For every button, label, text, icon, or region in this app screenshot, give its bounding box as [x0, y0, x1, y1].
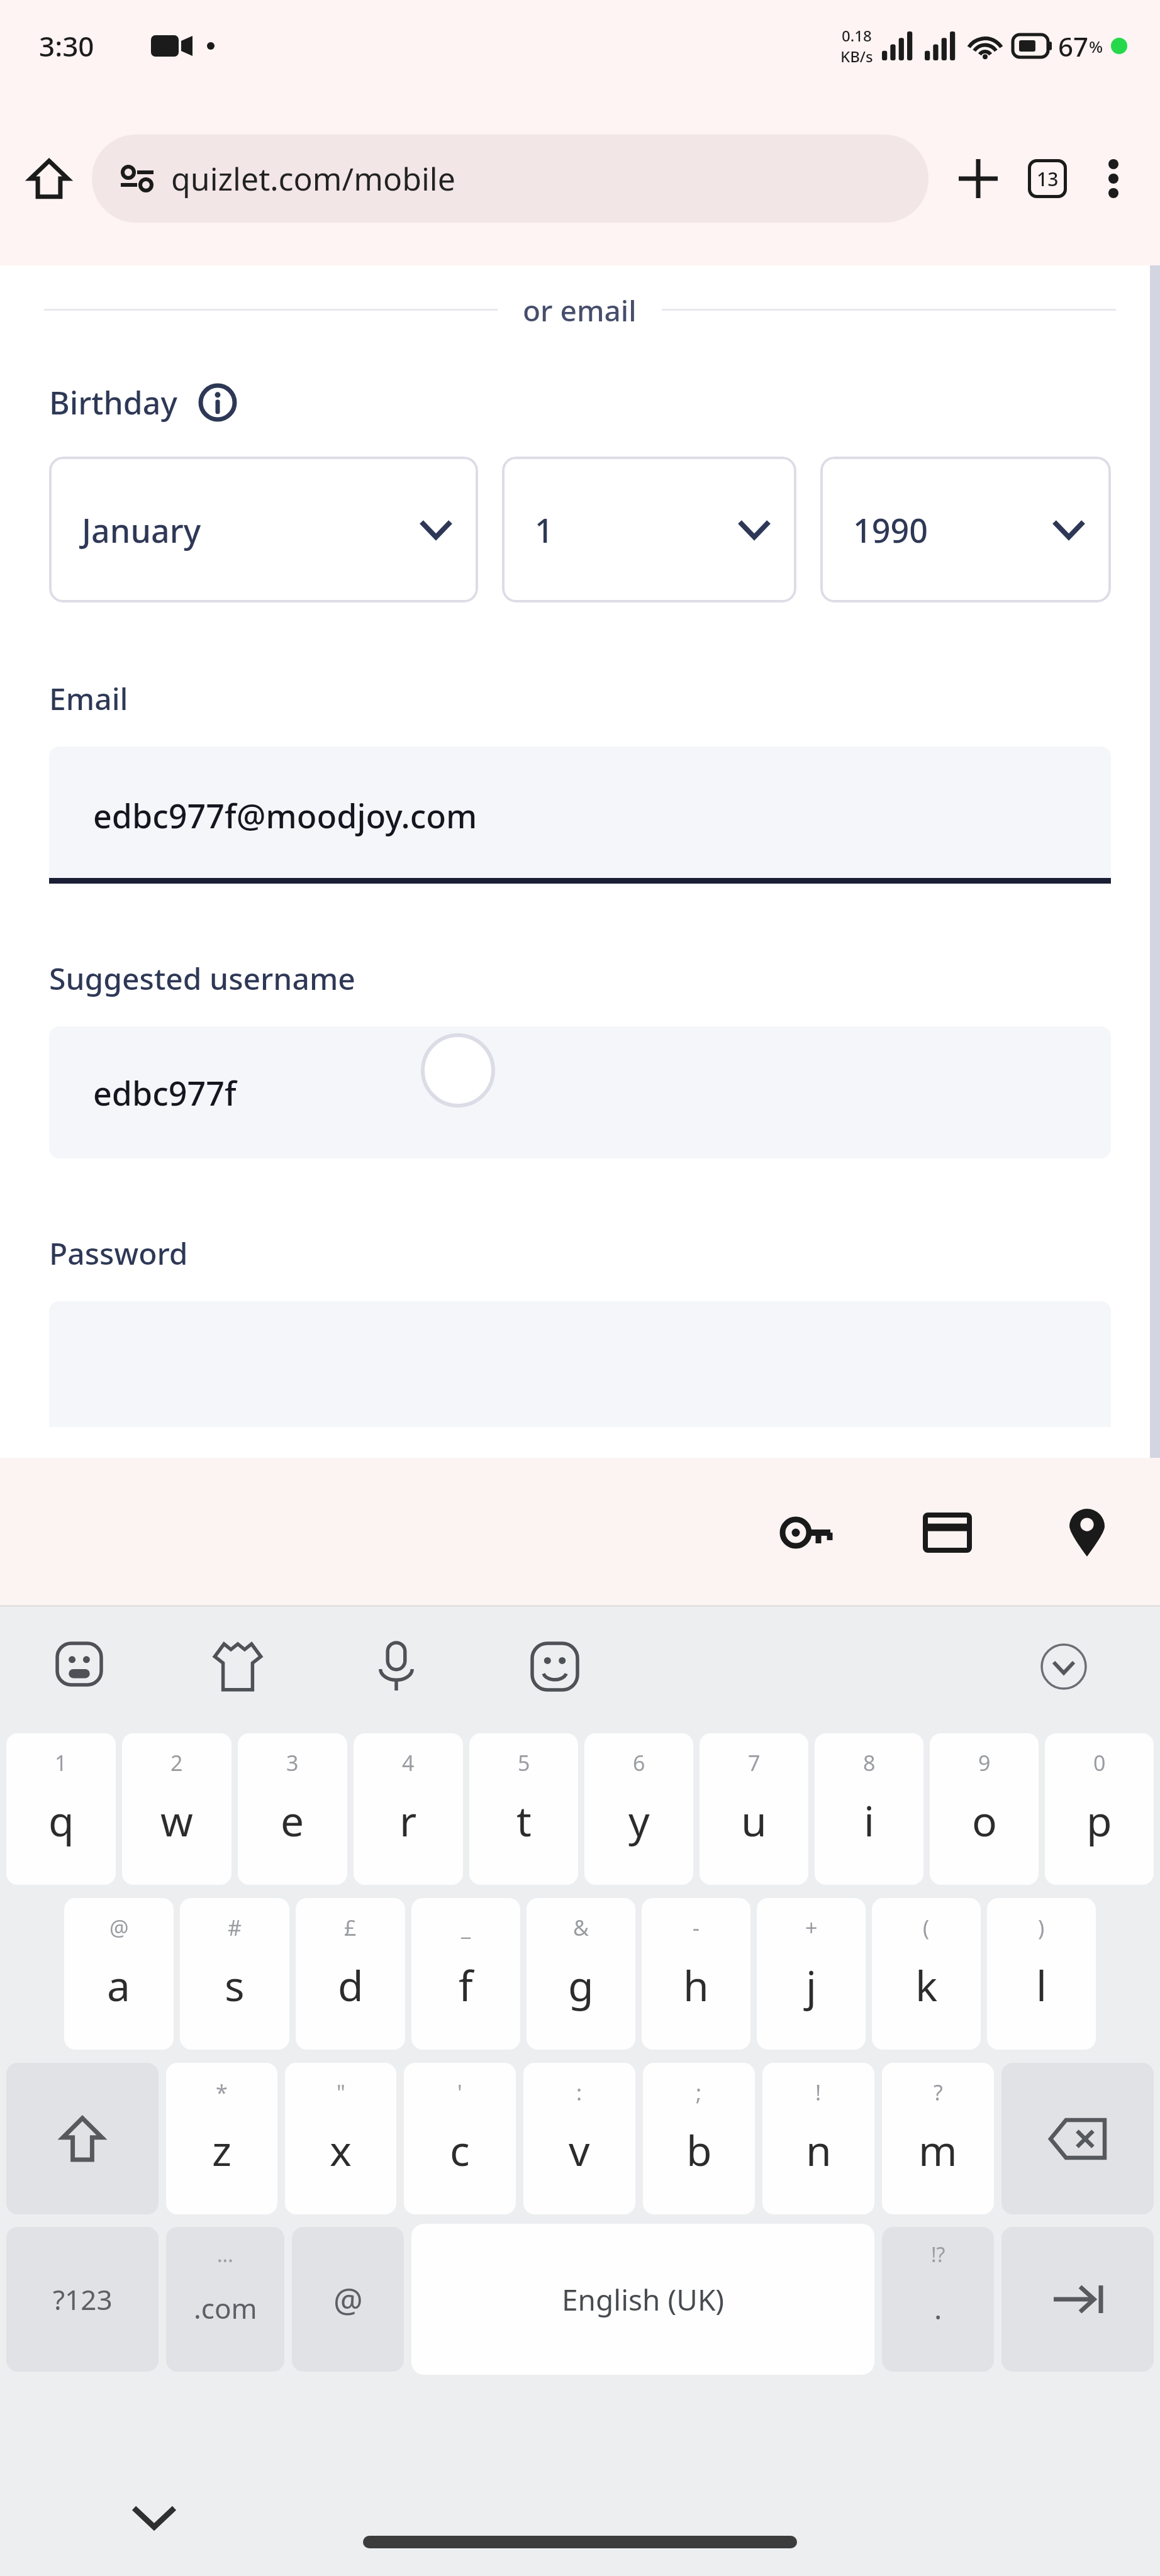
staticText: @: [109, 1913, 129, 1942]
button[interactable]: 1: [6, 1733, 116, 1885]
button[interactable]: _: [411, 1898, 520, 2050]
staticText: (: [923, 1913, 930, 1942]
staticText: 0.18: [842, 25, 872, 46]
staticText: g: [568, 1957, 594, 2013]
staticText: English (UK): [562, 2280, 725, 2319]
button[interactable]: 9: [930, 1733, 1039, 1885]
button[interactable]: edbc977f@moodjoy.com: [49, 747, 1111, 884]
button[interactable]: Tabs, 13 open: [1013, 144, 1082, 213]
button[interactable]: ...: [166, 2227, 284, 2372]
button[interactable]: *: [166, 2063, 277, 2214]
button[interactable]: Payment methods: [912, 1497, 983, 1568]
staticText: _: [461, 1913, 471, 1942]
staticText: .: [934, 2289, 942, 2328]
button[interactable]: +: [757, 1898, 866, 2050]
staticText: +: [805, 1913, 818, 1942]
button[interactable]: More: [1029, 1632, 1098, 1701]
button[interactable]: !: [762, 2063, 874, 2214]
staticText: 8: [863, 1748, 876, 1777]
staticText: Birthday: [49, 381, 177, 424]
button[interactable]: Emoji: [520, 1631, 590, 1702]
staticText: Password: [49, 1233, 188, 1274]
staticText: quizlet.com/mobile: [171, 157, 455, 200]
button[interactable]: Shift: [6, 2063, 159, 2214]
button[interactable]: ": [285, 2063, 396, 2214]
staticText: Email: [49, 678, 128, 719]
staticText: @: [333, 2277, 363, 2322]
button[interactable]: @: [64, 1898, 174, 2050]
staticText: £: [344, 1913, 357, 1942]
button[interactable]: 1990: [820, 457, 1111, 602]
staticText: r: [399, 1792, 417, 1848]
staticText: or email: [523, 291, 637, 328]
button[interactable]: Why we need your birthday: [195, 380, 240, 425]
button[interactable]: ?123: [6, 2227, 159, 2372]
staticText: Suggested username: [49, 958, 355, 999]
button[interactable]: @: [292, 2227, 404, 2372]
button[interactable]: English (UK): [411, 2224, 874, 2375]
button[interactable]: Home: [15, 145, 83, 213]
staticText: ?: [934, 2078, 943, 2107]
button[interactable]: Backspace: [1001, 2063, 1154, 2214]
staticText: .com: [194, 2289, 257, 2327]
button[interactable]: ?: [882, 2063, 994, 2214]
staticText: 3: [286, 1748, 299, 1777]
staticText: ...: [217, 2241, 233, 2268]
button[interactable]: Voice input: [361, 1631, 432, 1702]
button[interactable]: &: [527, 1898, 635, 2050]
staticText: ': [457, 2078, 462, 2107]
button[interactable]: 4: [354, 1733, 463, 1885]
button[interactable]: Addresses: [1052, 1497, 1122, 1568]
staticText: *: [216, 2078, 228, 2107]
staticText: ): [1038, 1913, 1045, 1942]
staticText: January: [82, 508, 201, 552]
staticText: edbc977f: [93, 1070, 237, 1115]
button[interactable]: 2: [122, 1733, 231, 1885]
staticText: 67: [1058, 28, 1089, 64]
staticText: 2: [170, 1748, 183, 1777]
button[interactable]: 5: [469, 1733, 578, 1885]
button[interactable]: 0: [1045, 1733, 1154, 1885]
button[interactable]: 8: [815, 1733, 923, 1885]
button[interactable]: -: [642, 1898, 750, 2050]
button[interactable]: quizlet.com/mobile: [92, 135, 929, 223]
button[interactable]: (: [872, 1898, 981, 2050]
button[interactable]: January: [49, 457, 478, 602]
staticText: 1: [55, 1748, 67, 1777]
staticText: u: [741, 1792, 767, 1848]
button[interactable]: 7: [700, 1733, 808, 1885]
button[interactable]: edbc977f: [49, 1026, 1111, 1158]
button[interactable]: More options: [1082, 147, 1145, 210]
button[interactable]: 1: [502, 457, 796, 602]
button[interactable]: New tab: [944, 144, 1013, 213]
staticText: b: [686, 2121, 712, 2178]
button[interactable]: ;: [643, 2063, 755, 2214]
staticText: q: [48, 1792, 74, 1848]
staticText: KB/s: [840, 46, 873, 67]
staticText: o: [972, 1792, 997, 1848]
staticText: j: [806, 1957, 817, 2013]
button[interactable]: Themes: [203, 1631, 273, 1702]
staticText: 3:30: [39, 27, 94, 65]
button[interactable]: Passwords: [771, 1497, 842, 1568]
staticText: d: [338, 1957, 364, 2013]
staticText: k: [915, 1957, 938, 2013]
button[interactable]: Hide keyboard: [120, 2483, 189, 2552]
button[interactable]: Stickers: [44, 1631, 114, 1702]
button[interactable]: :: [523, 2063, 635, 2214]
staticText: f: [459, 1957, 473, 2013]
button[interactable]: 3: [238, 1733, 347, 1885]
staticText: t: [516, 1792, 532, 1848]
button[interactable]: ': [404, 2063, 516, 2214]
button[interactable]: £: [296, 1898, 405, 2050]
button[interactable]: #: [180, 1898, 289, 2050]
button[interactable]: !?: [882, 2227, 994, 2372]
button[interactable]: 6: [584, 1733, 693, 1885]
staticText: n: [806, 2121, 832, 2178]
staticText: 1: [535, 508, 554, 552]
staticText: z: [212, 2121, 232, 2178]
button[interactable]: Next field: [1001, 2227, 1154, 2372]
button[interactable]: ): [987, 1898, 1096, 2050]
staticText: s: [225, 1957, 245, 2013]
